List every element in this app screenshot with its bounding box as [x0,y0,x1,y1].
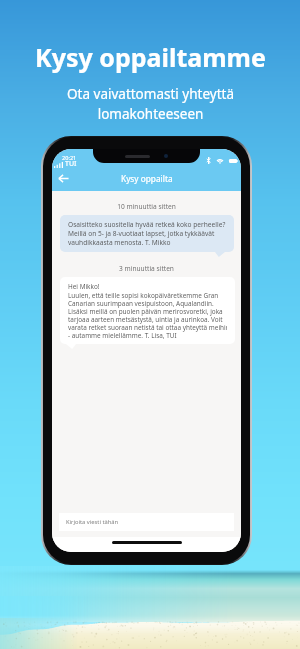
staticText: Kysy oppailtamme [35,40,266,74]
staticText: TUI [65,159,77,169]
staticText: 10 minuuttia sitten [52,202,241,211]
button[interactable]: Back [55,170,71,186]
staticText: Ota vaivattomasti yhteyttä lomakohteesee… [67,85,234,123]
button[interactable]: Hei Mikko! Luulen, että teille sopisi ko… [68,282,227,339]
staticText: 20:21 [62,154,77,162]
button[interactable]: Kirjoita viesti tähän [59,513,234,531]
staticText: 3 minuuttia sitten [52,264,241,273]
staticText: Kirjoita viesti tähän [66,518,119,526]
staticText: Osaisitteko suositella hyvää retkeä koko… [68,220,226,247]
button[interactable]: Osaisitteko suositella hyvää retkeä koko… [68,220,226,247]
staticText: Hei Mikko! Luulen, että teille sopisi ko… [68,282,227,339]
staticText: Kysy oppailta [121,173,173,184]
